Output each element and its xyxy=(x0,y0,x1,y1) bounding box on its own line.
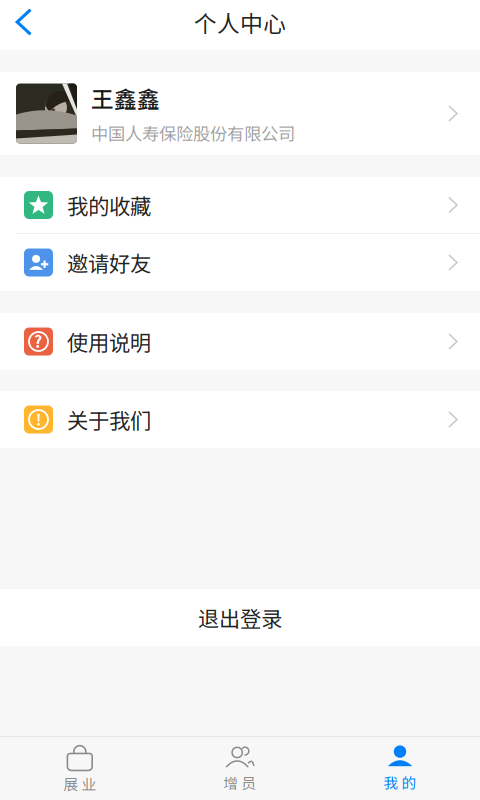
staticText: 个人中心 xyxy=(194,6,286,38)
staticText: 邀请好友 xyxy=(67,247,151,278)
button[interactable]: 增 员 xyxy=(160,737,320,800)
button[interactable]: 退出登录 xyxy=(0,589,480,646)
button[interactable]: 我的收藏 xyxy=(0,177,480,233)
staticText: 增 员 xyxy=(223,772,256,793)
staticText: 使用说明 xyxy=(67,326,151,357)
staticText: 关于我们 xyxy=(67,404,151,435)
button[interactable]: Back xyxy=(0,0,48,44)
button[interactable]: 邀请好友 xyxy=(0,234,480,291)
button[interactable]: 我 的 xyxy=(320,737,480,800)
button[interactable]: 关于我们 xyxy=(0,391,480,448)
staticText: 退出登录 xyxy=(198,602,282,633)
staticText: 我的收藏 xyxy=(67,190,151,220)
button[interactable]: 展 业 xyxy=(0,737,160,800)
staticText: 王鑫鑫 xyxy=(91,81,160,114)
staticText: 展 业 xyxy=(63,773,96,794)
staticText: 我 的 xyxy=(383,771,416,793)
button[interactable]: 王鑫鑫 xyxy=(0,72,480,155)
button[interactable]: 使用说明 xyxy=(0,313,480,370)
staticText: 中国人寿保险股份有限公司 xyxy=(91,120,295,145)
